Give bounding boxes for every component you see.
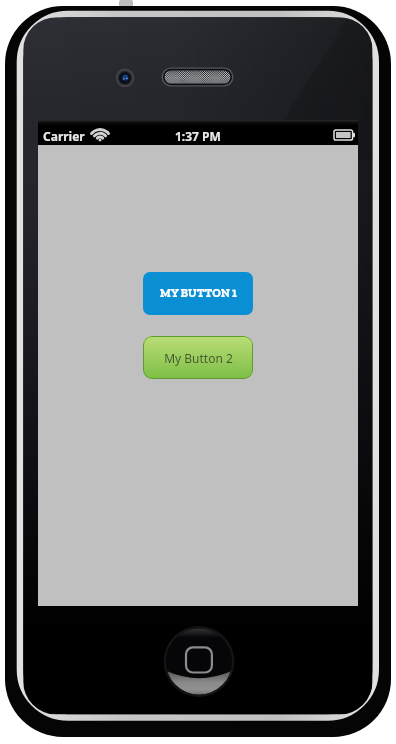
staticText: MY BUTTON 1 [160,286,237,300]
button[interactable]: My Button 2 [143,336,253,379]
staticText: My Button 2 [164,350,233,366]
staticText: Carrier [43,128,85,144]
button[interactable]: MY BUTTON 1 [143,272,253,315]
staticText: 1:37 PM [175,128,221,144]
